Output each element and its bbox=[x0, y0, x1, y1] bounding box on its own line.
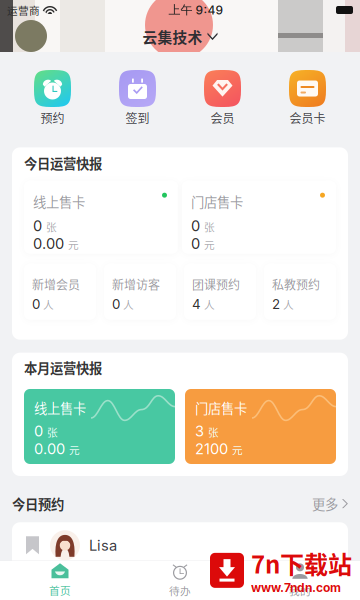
staticText: 本月运营快报 bbox=[24, 358, 102, 377]
staticText: 上午 9:49 bbox=[168, 2, 223, 17]
staticText: 4 bbox=[192, 296, 201, 312]
staticText: 2 bbox=[272, 296, 280, 312]
staticText: Lisa bbox=[89, 536, 117, 554]
button[interactable]: 我的 bbox=[240, 558, 360, 600]
staticText: 0.00 bbox=[34, 440, 65, 458]
staticText: 张 bbox=[47, 424, 58, 439]
staticText: 元 bbox=[204, 237, 215, 252]
staticText: 新增访客 bbox=[112, 276, 160, 293]
staticText: 元 bbox=[69, 442, 80, 457]
button[interactable]: Lisa bbox=[12, 522, 348, 568]
staticText: 签到 bbox=[125, 109, 149, 126]
staticText: 0 bbox=[191, 217, 200, 235]
staticText: 更多 bbox=[312, 494, 338, 513]
staticText: 0.00 bbox=[33, 235, 64, 252]
staticText: 0 bbox=[33, 217, 42, 235]
staticText: 线上售卡 bbox=[33, 192, 85, 211]
staticText: 0 bbox=[34, 422, 43, 440]
staticText: 预约 bbox=[40, 109, 64, 126]
staticText: 元 bbox=[232, 442, 243, 457]
staticText: 会员卡 bbox=[289, 109, 325, 126]
button[interactable]: 预约 bbox=[10, 70, 95, 126]
staticText: 张 bbox=[208, 424, 219, 439]
staticText: 0 bbox=[32, 296, 40, 312]
staticText: 今日预约 bbox=[12, 494, 64, 513]
staticText: 门店售卡 bbox=[195, 398, 247, 417]
staticText: 3 bbox=[195, 422, 204, 440]
staticText: 云集技术 bbox=[142, 26, 202, 47]
staticText: 人 bbox=[283, 297, 294, 312]
staticText: 人 bbox=[43, 297, 54, 312]
staticText: 元 bbox=[68, 237, 79, 252]
staticText: 7n下载站 bbox=[251, 546, 352, 580]
staticText: 线上售卡 bbox=[34, 398, 86, 417]
button[interactable]: 签到 bbox=[95, 70, 180, 126]
staticText: 0 bbox=[191, 235, 200, 252]
staticText: 会员 bbox=[210, 109, 234, 126]
staticText: 首页 bbox=[49, 582, 71, 598]
button[interactable]: 会员 bbox=[180, 70, 265, 126]
button[interactable]: 首页 bbox=[0, 558, 120, 600]
staticText: 0 bbox=[112, 296, 120, 312]
staticText: 今日运营快报 bbox=[24, 153, 102, 173]
staticText: 2100 bbox=[195, 440, 228, 458]
button[interactable]: 更多 bbox=[312, 494, 348, 513]
staticText: 张 bbox=[204, 219, 215, 234]
staticText: 运营商 bbox=[7, 2, 40, 18]
button[interactable]: 待办 bbox=[120, 558, 240, 600]
staticText: 人 bbox=[204, 297, 215, 312]
staticText: 私教预约 bbox=[272, 276, 320, 293]
staticText: www.7ndn.com bbox=[251, 580, 341, 595]
staticText: 人 bbox=[123, 297, 134, 312]
staticText: 新增会员 bbox=[32, 276, 80, 293]
staticText: 团课预约 bbox=[192, 276, 240, 293]
staticText: 张 bbox=[46, 219, 57, 234]
staticText: 我的 bbox=[289, 583, 311, 598]
staticText: 待办 bbox=[169, 583, 191, 598]
staticText: 门店售卡 bbox=[191, 192, 243, 211]
button[interactable]: 会员卡 bbox=[265, 70, 350, 126]
